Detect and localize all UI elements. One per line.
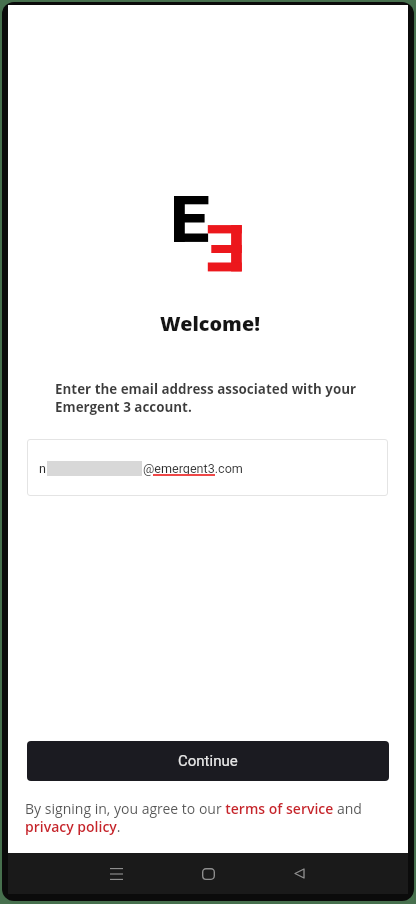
staticText: Welcome! [160,310,260,337]
button[interactable]: Home [186,853,230,894]
button[interactable]: By signing in, you agree to our terms of… [25,799,367,836]
button[interactable]: n [27,439,388,496]
staticText: n [39,461,46,476]
button[interactable]: Back [277,853,321,894]
button[interactable]: Recent apps [94,853,138,894]
staticText: @emergent3.com [143,461,243,476]
staticText: Enter the email address associated with … [55,380,367,416]
staticText: Continue [178,752,238,770]
button[interactable]: Continue [27,741,389,781]
